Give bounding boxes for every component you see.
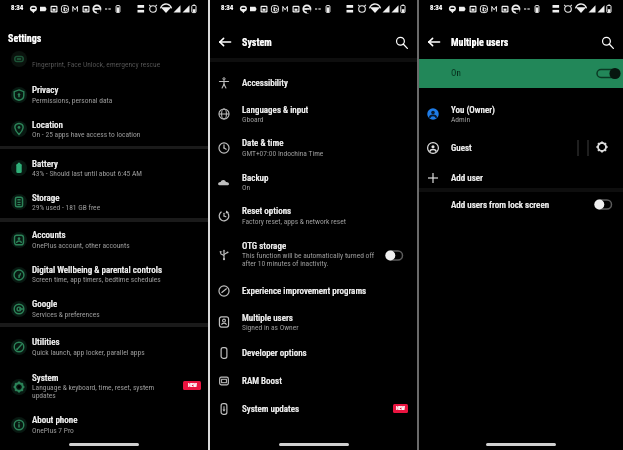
button[interactable]: On — [419, 59, 623, 88]
button[interactable] — [210, 234, 417, 276]
button[interactable] — [210, 394, 417, 424]
button[interactable]: Search — [389, 30, 414, 55]
staticText: OTG storage — [242, 241, 287, 252]
button[interactable] — [419, 190, 623, 220]
staticText: Services & preferences — [32, 310, 100, 319]
button[interactable] — [419, 163, 623, 193]
staticText: Factory reset, apps & network reset — [242, 217, 346, 226]
staticText: OnePlus account, other accounts — [32, 241, 130, 250]
staticText: GMT+07:00 Indochina Time — [242, 149, 324, 158]
staticText: Guest — [451, 143, 472, 154]
staticText: NEW — [188, 383, 197, 389]
staticText: Multiple users — [242, 313, 293, 324]
button[interactable] — [210, 99, 417, 129]
staticText: Admin — [451, 115, 471, 124]
staticText: 8:34 — [11, 4, 24, 12]
button[interactable] — [0, 410, 208, 440]
staticText: Languages & input — [242, 105, 309, 116]
staticText: About phone — [32, 415, 78, 426]
button[interactable] — [0, 260, 208, 290]
staticText: Language & keyboard, time, reset, system… — [32, 383, 177, 400]
button[interactable] — [419, 133, 623, 163]
button[interactable]: Add users from lock screen — [594, 198, 613, 211]
staticText: Screen time, app timers, bedtime schedul… — [32, 275, 161, 284]
button[interactable] — [0, 153, 208, 183]
button[interactable] — [210, 68, 417, 98]
staticText: Gboard — [242, 115, 264, 124]
staticText: OnePlus 7 Pro — [32, 426, 74, 435]
staticText: Location — [32, 120, 63, 131]
staticText: Multiple users — [451, 37, 509, 49]
staticText: On - 25 apps have access to location — [32, 130, 141, 139]
staticText: 8:34 — [430, 4, 443, 12]
staticText: Add users from lock screen — [451, 200, 550, 211]
button[interactable] — [0, 294, 208, 324]
staticText: Date & time — [242, 138, 284, 149]
staticText: 43% - Should last until about 6:45 AM — [32, 169, 143, 178]
staticText: System — [32, 373, 59, 384]
staticText: Signed in as Owner — [242, 323, 299, 332]
staticText: You (Owner) — [451, 105, 495, 116]
button[interactable] — [210, 366, 417, 396]
button[interactable] — [419, 99, 623, 129]
button[interactable] — [0, 332, 208, 362]
staticText: Permissions, personal data — [32, 96, 113, 105]
staticText: Privacy — [32, 85, 59, 96]
button[interactable] — [210, 276, 417, 306]
button[interactable]: Guest settings — [591, 136, 613, 158]
staticText: System — [242, 37, 272, 49]
button[interactable] — [210, 338, 417, 368]
staticText: Reset options — [242, 206, 292, 217]
button[interactable] — [0, 187, 208, 217]
staticText: Accounts — [32, 230, 66, 241]
button[interactable]: Back — [212, 29, 238, 55]
staticText: Battery — [32, 159, 58, 170]
button[interactable]: Search — [595, 30, 620, 55]
staticText: 8:34 — [221, 4, 234, 12]
staticText: Storage — [32, 193, 60, 204]
staticText: NEW — [396, 406, 405, 412]
button[interactable] — [0, 366, 208, 408]
staticText: Backup — [242, 173, 269, 184]
staticText: Add user — [451, 173, 483, 184]
staticText: System updates — [242, 404, 300, 415]
staticText: On — [451, 68, 461, 79]
staticText: 29% used - 181 GB free — [32, 203, 101, 212]
button[interactable] — [0, 114, 208, 144]
button[interactable] — [210, 133, 417, 163]
button[interactable]: OTG storage — [385, 249, 404, 262]
button[interactable] — [210, 307, 417, 337]
staticText: Utilities — [32, 337, 60, 348]
staticText: This function will be automatically turn… — [242, 251, 382, 268]
staticText: Developer options — [242, 348, 307, 359]
staticText: Digital Wellbeing & parental controls — [32, 265, 163, 276]
staticText: On — [242, 183, 251, 192]
button[interactable]: Back — [421, 29, 447, 55]
button[interactable] — [0, 225, 208, 255]
button[interactable] — [0, 44, 208, 74]
staticText: Google — [32, 299, 58, 310]
staticText: Fingerprint, Face Unlock, emergency resc… — [32, 60, 161, 69]
button[interactable] — [0, 80, 208, 110]
staticText: Quick launch, app locker, parallel apps — [32, 348, 145, 357]
staticText: Settings — [8, 33, 42, 45]
button[interactable] — [210, 168, 417, 198]
staticText: Accessibility — [242, 78, 288, 89]
staticText: Experience improvement programs — [242, 286, 367, 297]
staticText: RAM Boost — [242, 376, 282, 387]
button[interactable] — [210, 201, 417, 231]
